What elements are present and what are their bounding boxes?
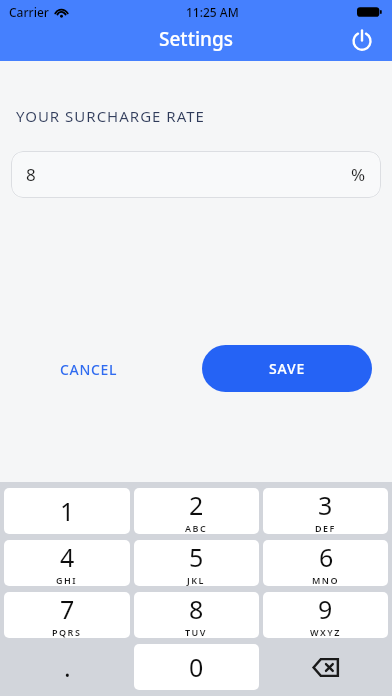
staticText: 11:25 AM <box>186 4 239 20</box>
staticText: 9 <box>318 592 333 626</box>
staticText: JKL <box>187 574 206 586</box>
button[interactable]: 9 <box>263 592 388 638</box>
staticText: ABC <box>185 522 208 534</box>
staticText: Carrier <box>9 4 49 20</box>
staticText: 3 <box>318 488 333 522</box>
staticText: PQRS <box>52 626 82 638</box>
staticText: GHI <box>56 574 78 586</box>
staticText: TUV <box>185 626 208 638</box>
staticText: 4 <box>60 540 75 574</box>
button[interactable]: Power <box>345 23 379 57</box>
button[interactable]: 4 <box>4 540 130 586</box>
staticText: 1 <box>60 494 75 528</box>
button[interactable]: 7 <box>4 592 130 638</box>
staticText: 0 <box>189 650 204 684</box>
staticText: 8 <box>189 592 204 626</box>
staticText: 5 <box>189 540 204 574</box>
staticText: 6 <box>319 540 334 574</box>
button[interactable]: 2 <box>134 488 259 534</box>
staticText: Settings <box>159 26 233 52</box>
staticText: DEF <box>315 522 336 534</box>
staticText: % <box>351 163 366 186</box>
staticText: 8 <box>26 163 36 186</box>
button[interactable]: 8 <box>11 151 381 198</box>
staticText: 7 <box>60 592 75 626</box>
staticText: CANCEL <box>60 360 118 379</box>
button[interactable]: 8 <box>134 592 259 638</box>
button[interactable]: 1 <box>4 488 130 534</box>
staticText: SAVE <box>269 359 306 378</box>
button[interactable]: Delete <box>263 644 388 690</box>
button[interactable]: 6 <box>263 540 388 586</box>
button[interactable]: 5 <box>134 540 259 586</box>
staticText: YOUR SURCHARGE RATE <box>16 106 205 126</box>
staticText: . <box>64 650 71 684</box>
button[interactable]: 3 <box>263 488 388 534</box>
button[interactable]: 0 <box>134 644 259 690</box>
button[interactable]: CANCEL <box>60 348 118 390</box>
button[interactable]: SAVE <box>202 345 372 392</box>
button[interactable]: . <box>4 644 130 690</box>
staticText: 2 <box>189 488 204 522</box>
staticText: MNO <box>312 574 340 586</box>
staticText: WXYZ <box>310 626 341 638</box>
